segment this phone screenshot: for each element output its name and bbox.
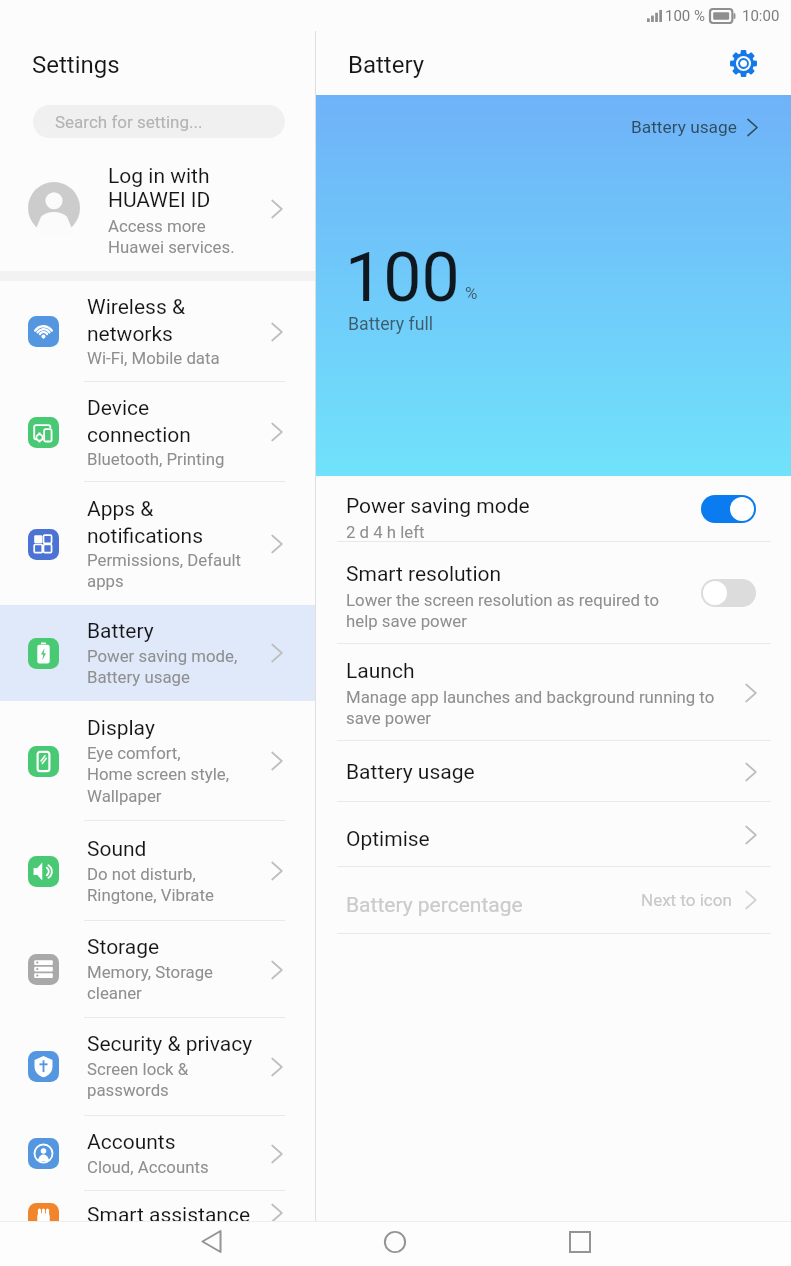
button[interactable]: Switch on bbox=[701, 495, 756, 523]
button[interactable]: Smart assistance bbox=[0, 1191, 315, 1266]
staticText: Search for setting... bbox=[55, 112, 203, 132]
button[interactable]: Recent apps bbox=[556, 1219, 604, 1264]
staticText: Access more Huawei services. bbox=[108, 216, 235, 257]
button[interactable]: Settings bbox=[719, 39, 767, 87]
staticText: Device connection bbox=[87, 396, 191, 447]
staticText: Bluetooth, Printing bbox=[87, 449, 225, 469]
staticText: Optimise bbox=[346, 827, 430, 852]
staticText: Battery percentage bbox=[346, 893, 523, 918]
staticText: Permissions, Default apps bbox=[87, 550, 242, 592]
button[interactable]: Power saving mode bbox=[316, 476, 791, 542]
button[interactable]: Settings bbox=[0, 31, 315, 93]
staticText: Battery usage bbox=[631, 117, 737, 137]
staticText: Apps & notifications bbox=[87, 497, 203, 548]
staticText: Display bbox=[87, 716, 155, 741]
button[interactable]: Device connection bbox=[0, 382, 315, 482]
button[interactable]: Smart resolution bbox=[316, 542, 791, 644]
staticText: Screen lock & passwords bbox=[87, 1059, 189, 1101]
button[interactable]: Accounts bbox=[0, 1116, 315, 1191]
button[interactable]: Battery usage bbox=[316, 741, 791, 802]
staticText: Smart resolution bbox=[346, 562, 502, 587]
staticText: Power saving mode bbox=[346, 494, 530, 519]
button[interactable]: Wireless & networks bbox=[0, 281, 315, 382]
staticText: Battery usage bbox=[346, 760, 475, 785]
staticText: 100 bbox=[345, 238, 460, 318]
button[interactable]: Battery usage bbox=[631, 117, 762, 137]
staticText: Settings bbox=[32, 51, 120, 79]
button[interactable]: Optimise bbox=[316, 802, 791, 867]
staticText: Storage bbox=[87, 935, 160, 960]
button[interactable]: Apps & notifications bbox=[0, 482, 315, 606]
button[interactable]: Back bbox=[187, 1219, 235, 1264]
staticText: Memory, Storage cleaner bbox=[87, 962, 213, 1004]
staticText: Security & privacy bbox=[87, 1032, 253, 1057]
staticText: Sound bbox=[87, 837, 147, 862]
button[interactable]: Security & privacy bbox=[0, 1017, 315, 1116]
button[interactable]: Switch off bbox=[701, 579, 756, 607]
staticText: Accounts bbox=[87, 1130, 176, 1155]
button[interactable]: Search for setting... bbox=[33, 105, 285, 138]
staticText: 2 d 4 h left bbox=[346, 522, 425, 542]
button[interactable]: Battery percentage bbox=[316, 866, 791, 934]
button[interactable]: Launch bbox=[316, 644, 791, 741]
staticText: Wireless & networks bbox=[87, 295, 185, 346]
button[interactable]: Battery bbox=[0, 605, 315, 701]
staticText: Do not disturb, Ringtone, Vibrate bbox=[87, 864, 214, 906]
button[interactable]: Storage bbox=[0, 921, 315, 1018]
staticText: Power saving mode, Battery usage bbox=[87, 646, 238, 688]
staticText: Battery bbox=[87, 619, 154, 644]
staticText: Battery bbox=[348, 51, 425, 79]
staticText: % bbox=[465, 283, 478, 303]
staticText: Eye comfort, Home screen style, Wallpape… bbox=[87, 743, 230, 807]
staticText: Log in with HUAWEI ID bbox=[108, 164, 211, 212]
staticText: Launch bbox=[346, 659, 415, 684]
button[interactable]: Home bbox=[371, 1219, 419, 1264]
button[interactable]: Display bbox=[0, 701, 315, 821]
button[interactable]: Sound bbox=[0, 821, 315, 921]
staticText: Wi-Fi, Mobile data bbox=[87, 348, 220, 368]
staticText: Lower the screen resolution as required … bbox=[346, 590, 660, 632]
staticText: 10:00 bbox=[742, 7, 780, 25]
staticText: Smart assistance bbox=[87, 1203, 251, 1228]
staticText: Battery full bbox=[348, 314, 434, 335]
staticText: 100 % bbox=[665, 7, 705, 25]
staticText: Next to icon bbox=[641, 890, 732, 910]
staticText: Manage app launches and background runni… bbox=[346, 687, 715, 729]
staticText: Cloud, Accounts bbox=[87, 1157, 209, 1177]
